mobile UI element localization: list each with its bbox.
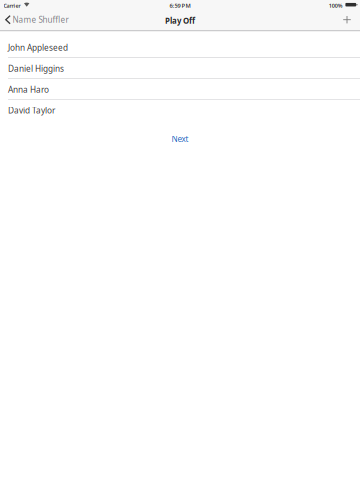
staticText: Anna Haro — [8, 84, 49, 95]
staticText: Name Shuffler — [12, 14, 68, 25]
staticText: John Appleseed — [8, 42, 68, 53]
button[interactable]: David Taylor — [0, 100, 360, 121]
button[interactable]: Add — [337, 9, 360, 30]
button[interactable]: Next — [160, 135, 200, 143]
button[interactable]: John Appleseed — [0, 37, 360, 58]
button[interactable]: Name Shuffler — [0, 9, 72, 30]
staticText: Carrier — [4, 2, 21, 9]
staticText: Play Off — [165, 15, 195, 26]
button[interactable]: Daniel Higgins — [0, 58, 360, 79]
staticText: Next — [171, 133, 188, 144]
staticText: Daniel Higgins — [8, 63, 64, 74]
button[interactable]: Anna Haro — [0, 79, 360, 100]
staticText: 100% — [329, 2, 343, 9]
staticText: 6:59 PM — [169, 2, 190, 9]
staticText: David Taylor — [8, 105, 55, 116]
